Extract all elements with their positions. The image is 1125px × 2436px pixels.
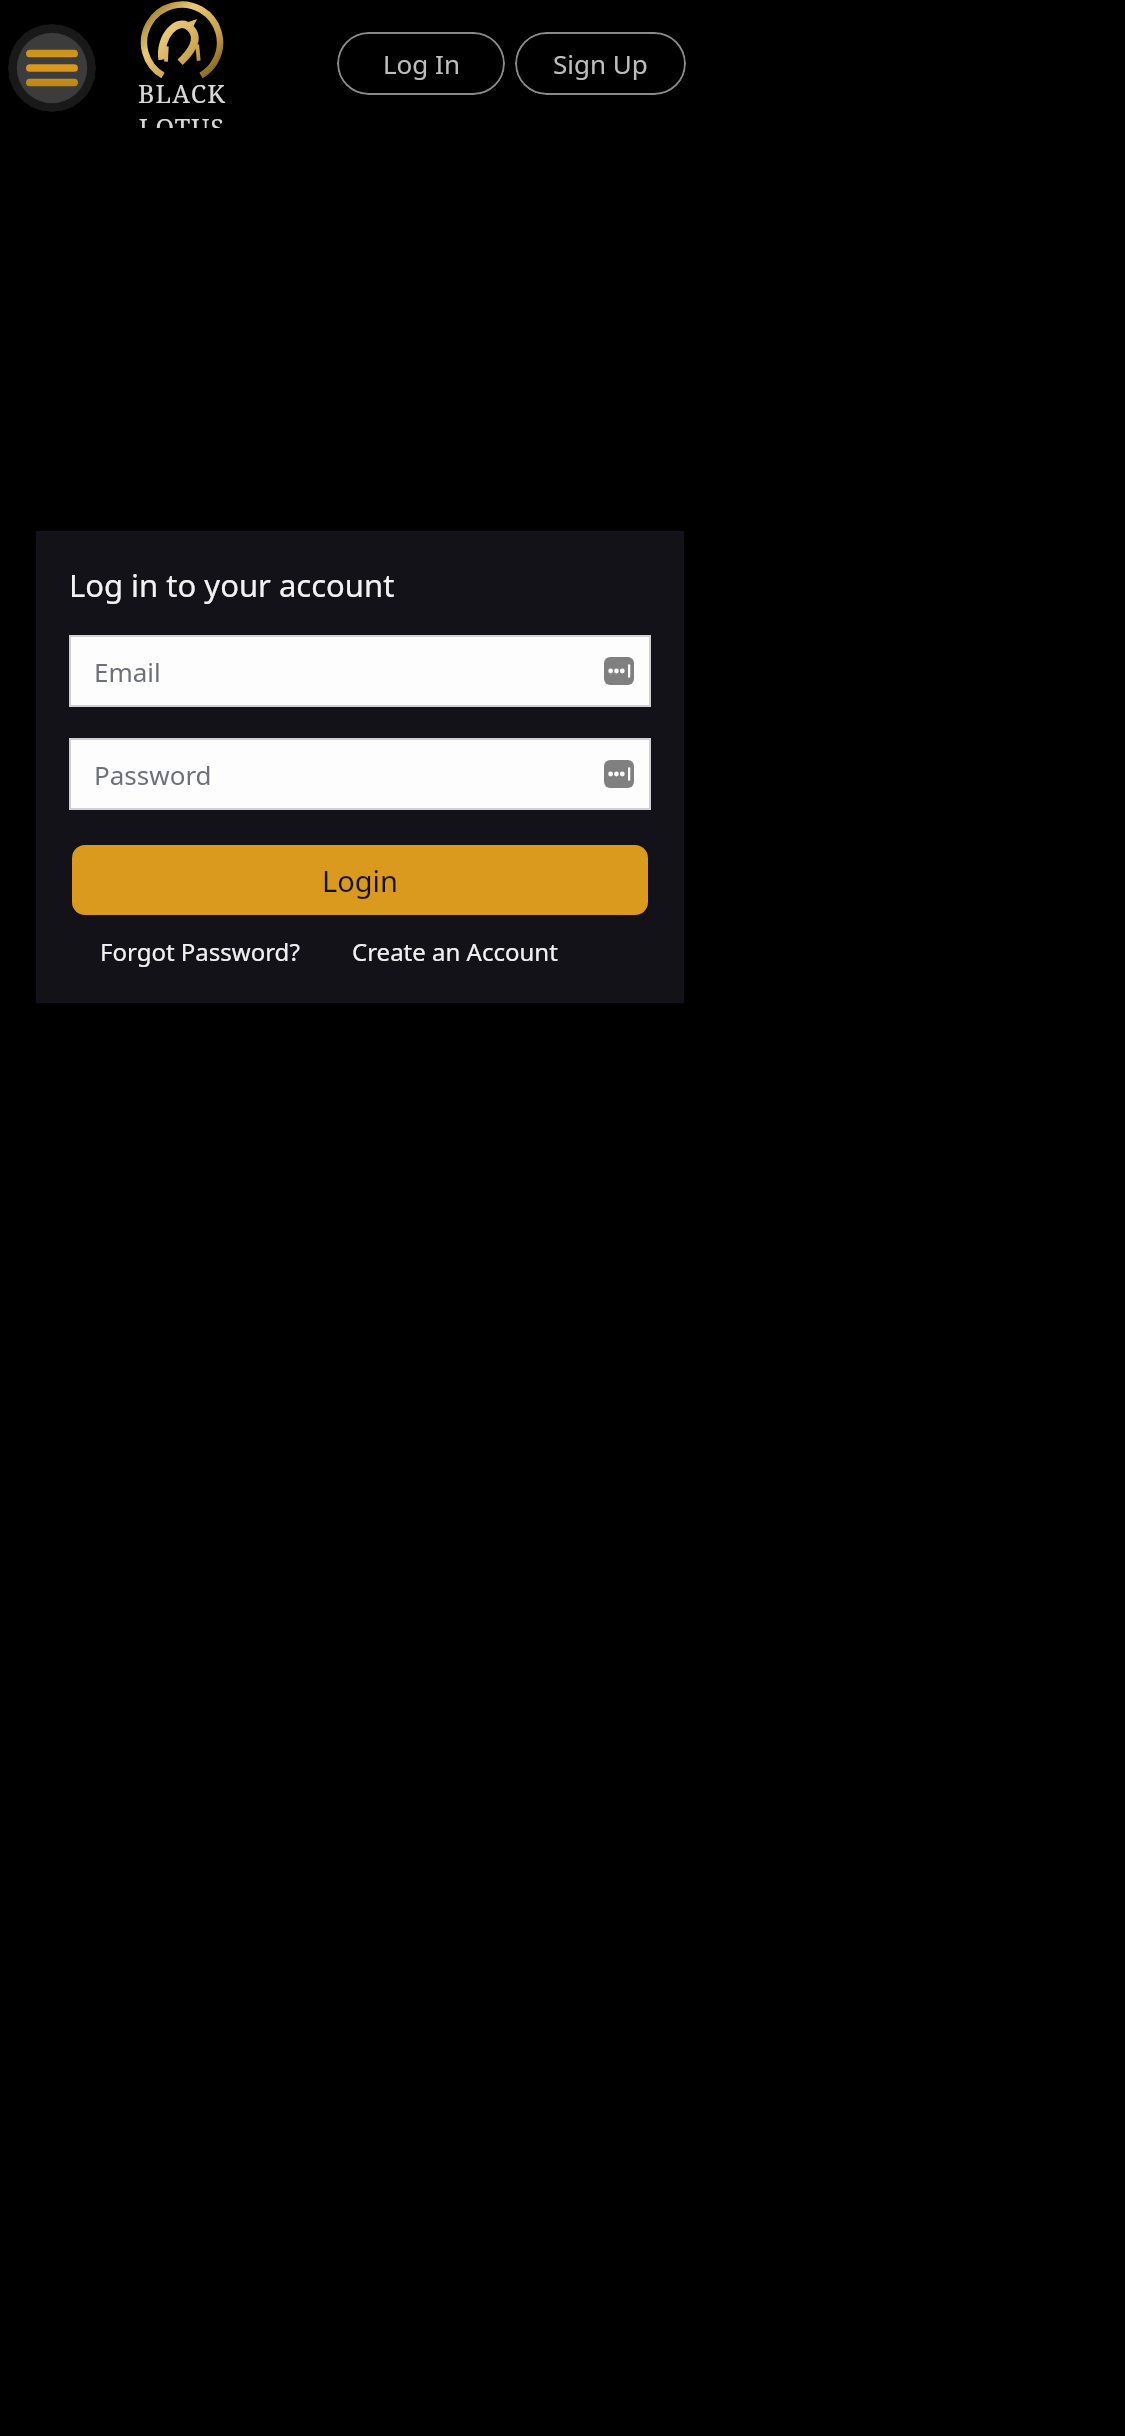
staticText: Password xyxy=(94,757,212,792)
button[interactable]: Password xyxy=(69,738,651,810)
staticText: Create an Account xyxy=(352,935,558,968)
button[interactable]: Autofill Password xyxy=(604,760,634,788)
button[interactable]: Create an Account xyxy=(352,929,558,974)
staticText: Sign Up xyxy=(553,46,648,81)
staticText: Log in to your account xyxy=(69,564,395,606)
staticText: BLACK LOTUS xyxy=(92,76,272,128)
staticText: Email xyxy=(94,654,161,689)
staticText: Forgot Password? xyxy=(100,935,300,968)
button[interactable]: Forgot Password? xyxy=(100,929,300,974)
staticText: Log In xyxy=(383,46,460,81)
button[interactable]: Black Lotus Casino home xyxy=(92,0,272,128)
button[interactable]: Sign Up xyxy=(515,32,686,95)
button[interactable]: Log In xyxy=(337,32,505,95)
button[interactable]: Email xyxy=(69,635,651,707)
staticText: Login xyxy=(322,861,398,900)
button[interactable]: Login xyxy=(72,845,648,915)
button[interactable]: Autofill Email xyxy=(604,657,634,685)
button[interactable]: Open menu xyxy=(8,24,96,112)
